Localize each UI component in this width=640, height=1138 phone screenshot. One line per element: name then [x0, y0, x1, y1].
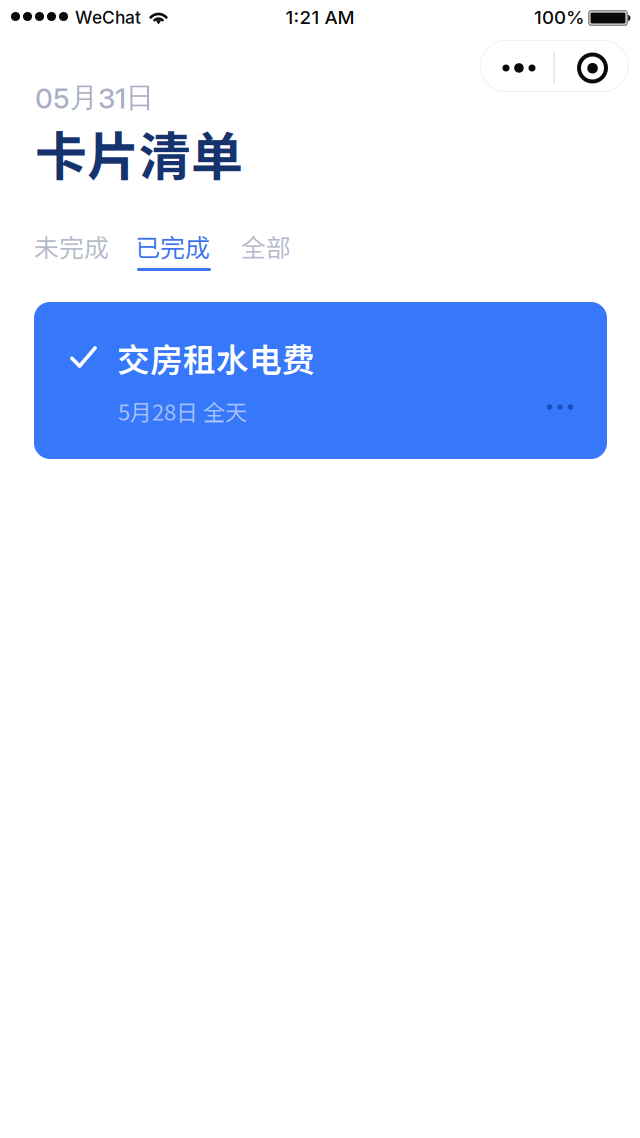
staticText: 1:21 AM	[285, 6, 354, 29]
staticText: 卡片清单	[35, 115, 243, 190]
staticText: 100%	[534, 6, 585, 29]
staticText: 5月28日 全天	[118, 395, 247, 427]
button[interactable]: 全部	[241, 228, 321, 268]
staticText: WeChat	[75, 7, 141, 28]
staticText: 未完成	[34, 228, 109, 264]
button[interactable]: More options	[480, 40, 554, 92]
button[interactable]: Task options	[529, 384, 591, 430]
staticText: 05月31日	[35, 80, 154, 115]
button[interactable]: 交房租水电费	[34, 302, 607, 459]
button[interactable]: 未完成	[34, 228, 138, 268]
staticText: 交房租水电费	[117, 334, 315, 381]
button[interactable]: 已完成	[135, 228, 239, 268]
staticText: 已完成	[135, 228, 210, 264]
button[interactable]: Close mini program	[554, 40, 629, 92]
staticText: 全部	[241, 228, 291, 264]
